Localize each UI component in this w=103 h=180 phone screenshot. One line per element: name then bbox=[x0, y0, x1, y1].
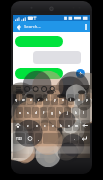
button[interactable]: Emoji bbox=[26, 133, 34, 144]
button[interactable]: i bbox=[67, 94, 74, 105]
staticText: . bbox=[74, 137, 75, 141]
button[interactable]: x bbox=[33, 120, 40, 131]
button[interactable]: b bbox=[57, 120, 64, 131]
button[interactable]: c bbox=[41, 120, 48, 131]
staticText: b bbox=[60, 124, 62, 128]
staticText: p bbox=[86, 98, 88, 102]
staticText: r bbox=[38, 98, 40, 102]
button[interactable]: . bbox=[71, 133, 78, 144]
staticText: n bbox=[68, 124, 70, 128]
staticText: ?123 bbox=[16, 137, 22, 141]
staticText: c bbox=[44, 124, 46, 128]
staticText: Search... bbox=[24, 24, 41, 30]
staticText: s bbox=[27, 111, 29, 115]
button[interactable]: Enter bbox=[79, 133, 90, 144]
button[interactable]: p bbox=[83, 94, 90, 105]
staticText: u bbox=[62, 98, 64, 102]
button[interactable]: v bbox=[49, 120, 56, 131]
staticText: g bbox=[51, 111, 53, 115]
button[interactable]: z bbox=[24, 120, 32, 131]
staticText: w bbox=[22, 98, 25, 102]
button[interactable]: m bbox=[73, 120, 80, 131]
button[interactable] bbox=[33, 51, 81, 64]
button[interactable]: l bbox=[80, 107, 87, 118]
button[interactable]: y bbox=[51, 94, 58, 105]
staticText: t bbox=[46, 98, 48, 102]
button[interactable]: w bbox=[20, 94, 26, 105]
button[interactable]: Shift bbox=[13, 120, 23, 131]
button[interactable] bbox=[15, 36, 63, 47]
button[interactable]: f bbox=[40, 107, 47, 118]
button[interactable]: t bbox=[43, 94, 50, 105]
button[interactable]: , bbox=[35, 133, 42, 144]
staticText: h bbox=[59, 111, 61, 115]
button[interactable]: a bbox=[16, 107, 23, 118]
staticText: x bbox=[36, 124, 38, 128]
button[interactable]: s bbox=[24, 107, 31, 118]
button[interactable]: o bbox=[75, 94, 82, 105]
button[interactable]: More options bbox=[81, 21, 90, 32]
staticText: o bbox=[78, 98, 80, 102]
button[interactable]: n bbox=[65, 120, 72, 131]
staticText: f bbox=[43, 111, 45, 115]
staticText: j bbox=[67, 111, 68, 115]
staticText: a bbox=[19, 111, 21, 115]
button[interactable]: Back bbox=[13, 21, 24, 32]
button[interactable]: d bbox=[32, 107, 39, 118]
button[interactable]: New message bbox=[76, 69, 85, 78]
button[interactable]: j bbox=[64, 107, 71, 118]
button[interactable] bbox=[43, 133, 70, 144]
staticText: k bbox=[75, 111, 77, 115]
button[interactable]: ?123 bbox=[13, 133, 25, 144]
staticText: , bbox=[38, 137, 39, 141]
button[interactable]: Backspace bbox=[81, 120, 90, 131]
staticText: i bbox=[70, 98, 71, 102]
button[interactable]: e bbox=[27, 94, 34, 105]
button[interactable]: k bbox=[72, 107, 79, 118]
button[interactable]: q bbox=[13, 94, 19, 105]
button[interactable]: g bbox=[48, 107, 55, 118]
button[interactable]: Search... bbox=[24, 21, 81, 32]
button[interactable]: h bbox=[56, 107, 63, 118]
button[interactable] bbox=[15, 68, 63, 79]
button[interactable]: r bbox=[35, 94, 42, 105]
staticText: q bbox=[15, 98, 17, 102]
staticText: v bbox=[52, 124, 54, 128]
staticText: e bbox=[30, 98, 32, 102]
button[interactable]: u bbox=[59, 94, 66, 105]
staticText: d bbox=[35, 111, 37, 115]
staticText: m bbox=[75, 124, 79, 128]
staticText: l bbox=[83, 111, 84, 115]
staticText: y bbox=[54, 98, 56, 102]
staticText: z bbox=[27, 124, 29, 128]
